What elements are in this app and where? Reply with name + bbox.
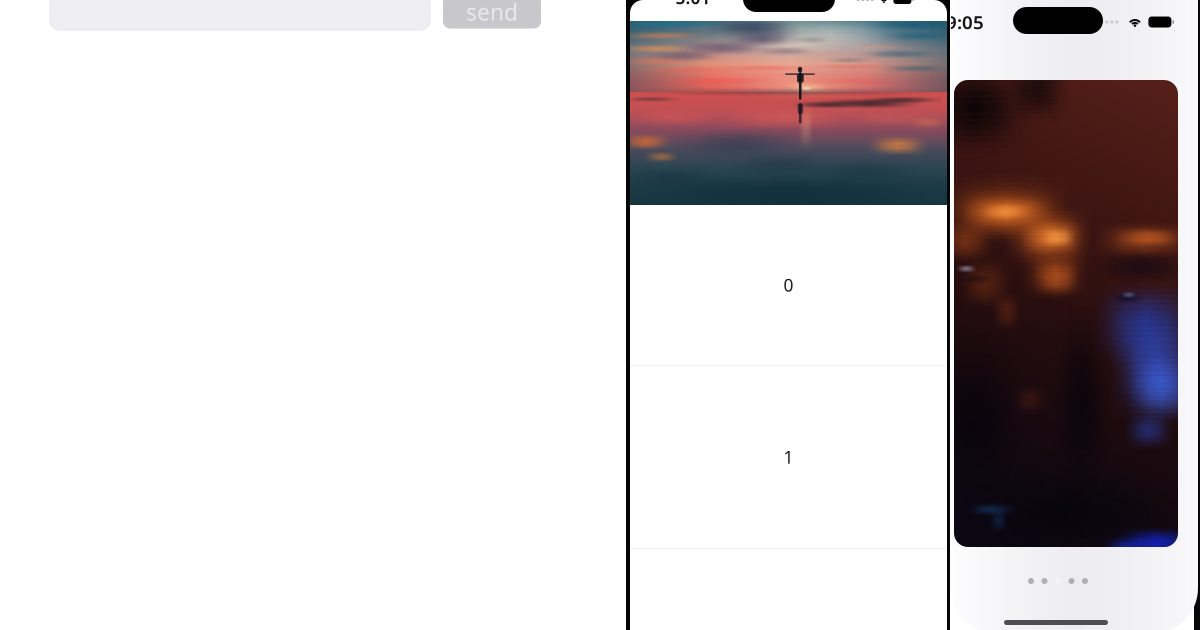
staticText: 0 <box>783 273 793 296</box>
staticText: 5:01 <box>675 0 710 9</box>
staticText: send <box>466 0 518 27</box>
button[interactable]: Page 3 of 5 <box>1020 571 1096 591</box>
staticText: 1 <box>783 445 793 468</box>
staticText: 9:05 <box>946 10 984 34</box>
button[interactable]: 0 <box>630 205 947 365</box>
button[interactable]: send <box>443 0 541 28</box>
button[interactable]: 1 <box>630 366 947 548</box>
